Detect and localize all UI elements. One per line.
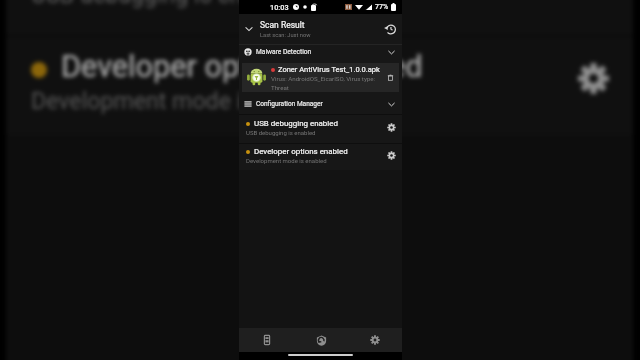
staticText: USB debugging is enabled [31,0,299,9]
staticText: Development mode is enabled [246,157,327,164]
button[interactable]: Developer options enabled [239,144,402,170]
staticText: Development mode is enabled [31,88,342,115]
staticText: Scan Result [260,20,305,30]
button[interactable]: Settings [348,328,402,352]
button[interactable]: Developer options enabled [6,37,633,135]
staticText: USB debugging is enabled [246,129,316,136]
other: Delete [387,74,394,81]
staticText: Developer options enabled [61,49,423,85]
button[interactable]: Malware Detection [239,45,402,59]
other: Scan history [385,24,396,35]
staticText: Configuration Manager [256,100,387,108]
staticText: Developer options enabled [254,147,348,156]
staticText: Virus: AndroidOS_EicarISO, Virus type: T… [271,75,388,91]
staticText: 77% [375,3,389,11]
button[interactable]: Zoner AntiVirus Test_1.0.0.apk [242,63,399,92]
staticText: Last scan: Just now [260,32,311,39]
button[interactable]: Device [239,328,294,352]
other: Configure [387,151,396,160]
staticText: USB debugging enabled [254,119,338,128]
button[interactable]: Protection [294,328,348,352]
other: Configure [577,62,610,95]
other: Configure [387,123,396,132]
button[interactable]: Configuration Manager [239,94,402,114]
staticText: 10:03 [270,3,289,12]
button[interactable]: USB debugging enabled [6,0,633,35]
button[interactable]: Scan Result [239,14,402,44]
button[interactable]: USB debugging enabled [239,115,402,143]
staticText: Malware Detection [256,48,387,56]
staticText: Zoner AntiVirus Test_1.0.0.apk [278,65,380,74]
